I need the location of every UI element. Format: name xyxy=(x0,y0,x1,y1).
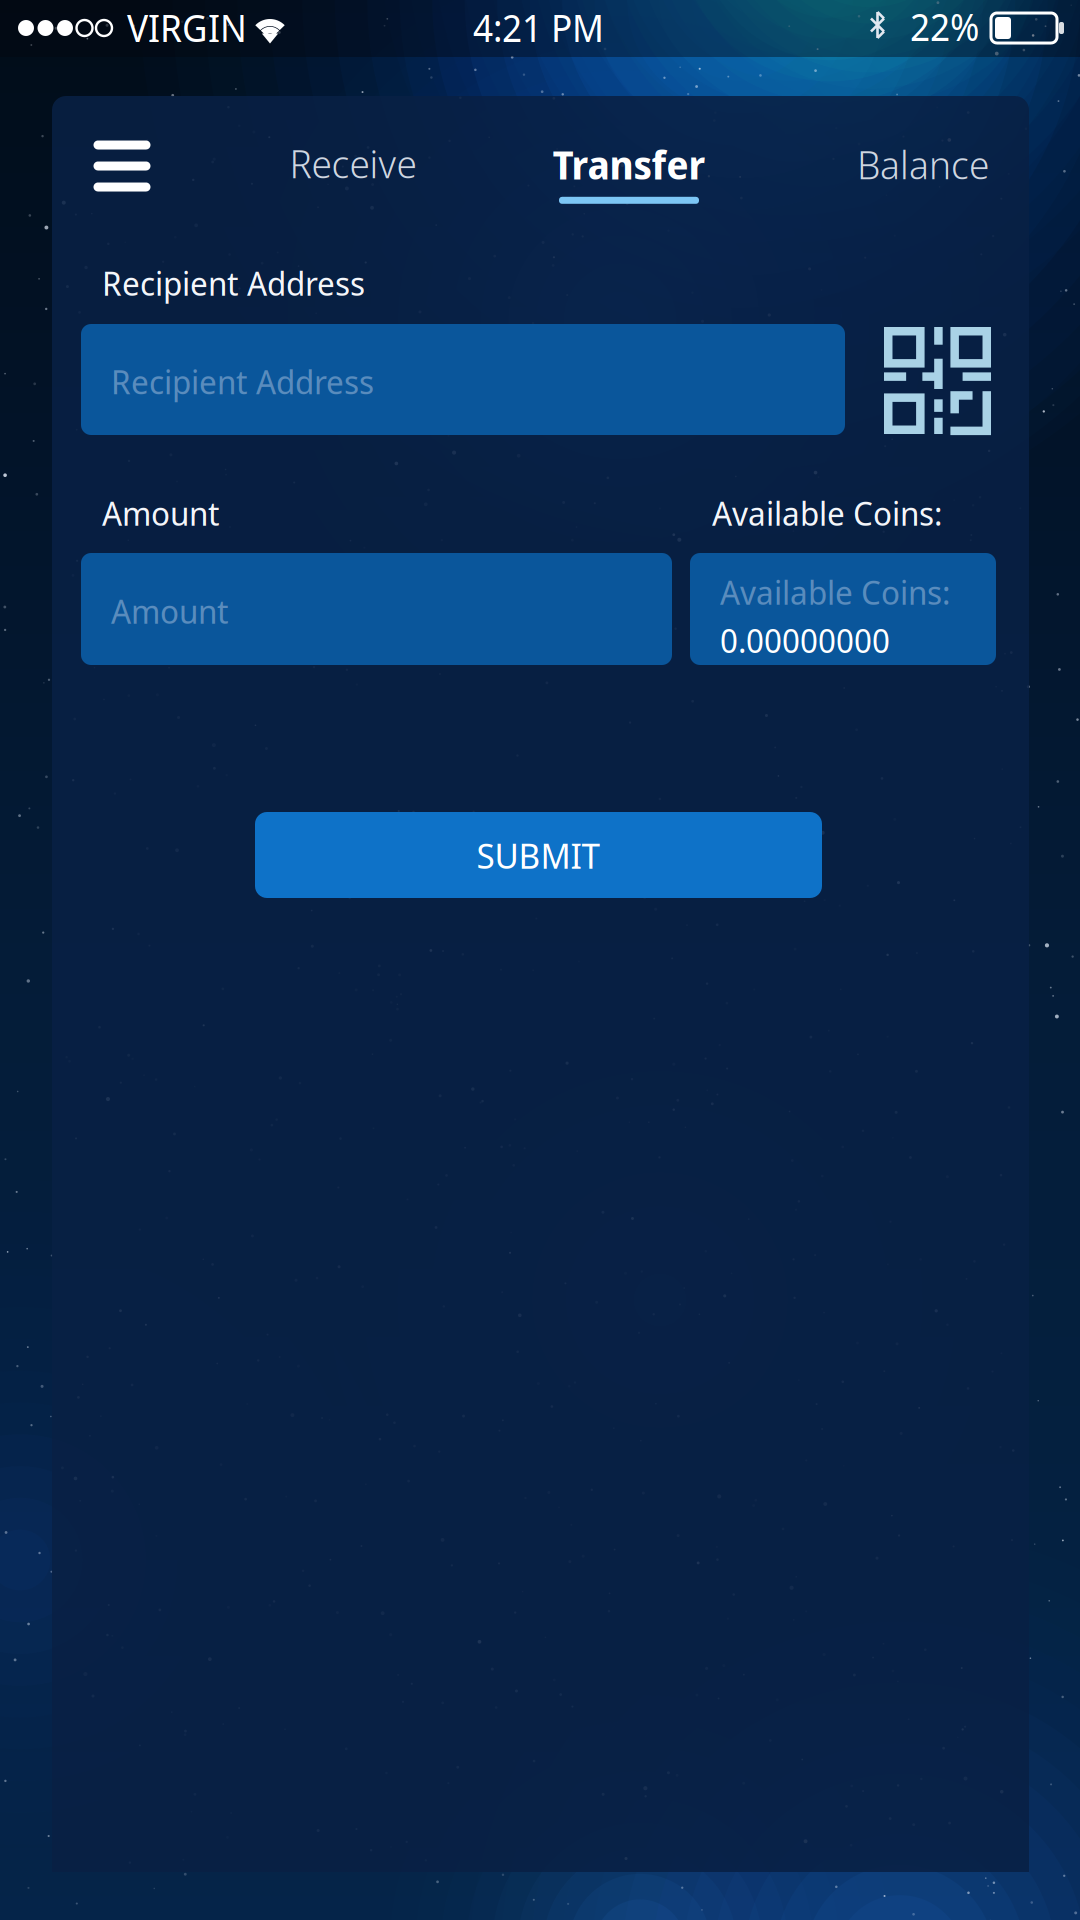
staticText: 0.00000000 xyxy=(720,617,890,663)
staticText: SUBMIT xyxy=(476,831,600,879)
button[interactable]: Menu xyxy=(67,118,177,214)
button[interactable]: Scan QR code xyxy=(880,323,995,438)
button[interactable]: Transfer xyxy=(507,119,751,223)
staticText: 4:21 PM xyxy=(473,2,604,53)
button[interactable]: SUBMIT xyxy=(255,812,822,898)
staticText: VIRGIN xyxy=(127,2,247,53)
staticText: Available Coins: xyxy=(712,490,942,535)
staticText: Amount xyxy=(102,490,220,535)
staticText: Available Coins: xyxy=(720,569,950,614)
button[interactable]: Receive xyxy=(231,119,475,207)
staticText: Recipient Address xyxy=(111,358,374,404)
button[interactable]: Balance xyxy=(801,120,1045,208)
staticText: Transfer xyxy=(552,138,705,191)
staticText: Recipient Address xyxy=(102,260,365,305)
staticText: Receive xyxy=(289,136,416,190)
staticText: 22% xyxy=(910,1,979,52)
staticText: Balance xyxy=(857,137,989,191)
staticText: Amount xyxy=(111,588,229,633)
